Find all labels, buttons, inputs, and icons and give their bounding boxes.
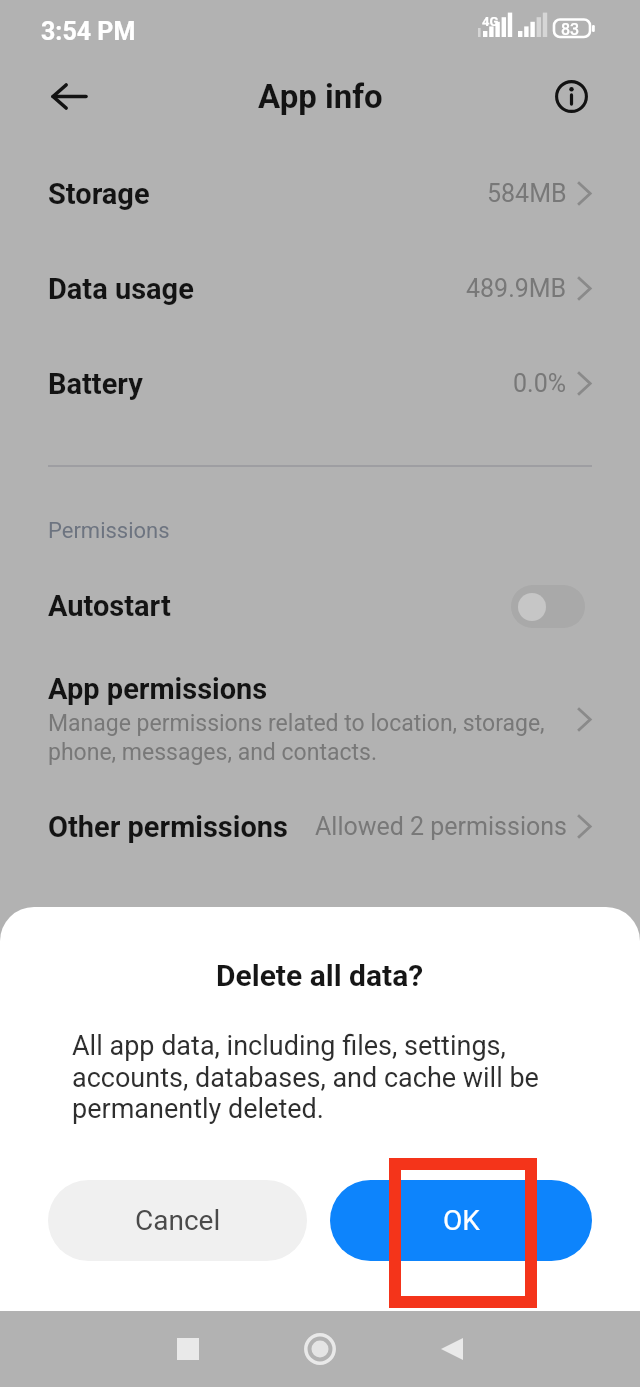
staticText: App info	[258, 77, 383, 116]
staticText: Other permissions	[48, 810, 288, 844]
staticText: 4G	[482, 14, 499, 29]
button[interactable]: Home	[288, 1317, 352, 1381]
button[interactable]: OK	[330, 1180, 592, 1261]
button[interactable]: Autostart toggle	[511, 585, 585, 628]
staticText: Storage	[48, 177, 150, 211]
staticText: 3:54 PM	[41, 17, 136, 46]
staticText: Cancel	[135, 1204, 221, 1237]
button[interactable]: Back	[40, 67, 98, 125]
staticText: 83	[561, 20, 580, 39]
staticText: Battery	[48, 367, 143, 401]
button[interactable]: Battery	[0, 336, 640, 431]
staticText: 0.0%	[513, 369, 567, 398]
button[interactable]: Other permissions	[0, 779, 640, 874]
staticText: Delete all data?	[216, 958, 424, 993]
staticText: All app data, including files, settings,…	[72, 1030, 586, 1124]
staticText: App permissions	[48, 672, 268, 706]
staticText: 489.9MB	[466, 274, 567, 303]
staticText: Data usage	[48, 272, 194, 306]
button[interactable]: Back	[420, 1317, 484, 1381]
staticText: Manage permissions related to location, …	[48, 710, 545, 766]
button[interactable]: Storage	[0, 146, 640, 241]
button[interactable]: App permissions	[0, 659, 640, 779]
button[interactable]: Recents	[156, 1317, 220, 1381]
staticText: OK	[443, 1204, 480, 1237]
staticText: 584MB	[487, 179, 567, 208]
staticText: Allowed 2 permissions	[315, 812, 567, 841]
button[interactable]: Cancel	[48, 1180, 307, 1261]
button[interactable]: Data usage	[0, 241, 640, 336]
button[interactable]: Autostart	[0, 568, 640, 644]
staticText: Autostart	[48, 589, 171, 623]
staticText: Permissions	[48, 518, 170, 544]
button[interactable]: App details	[547, 72, 595, 120]
